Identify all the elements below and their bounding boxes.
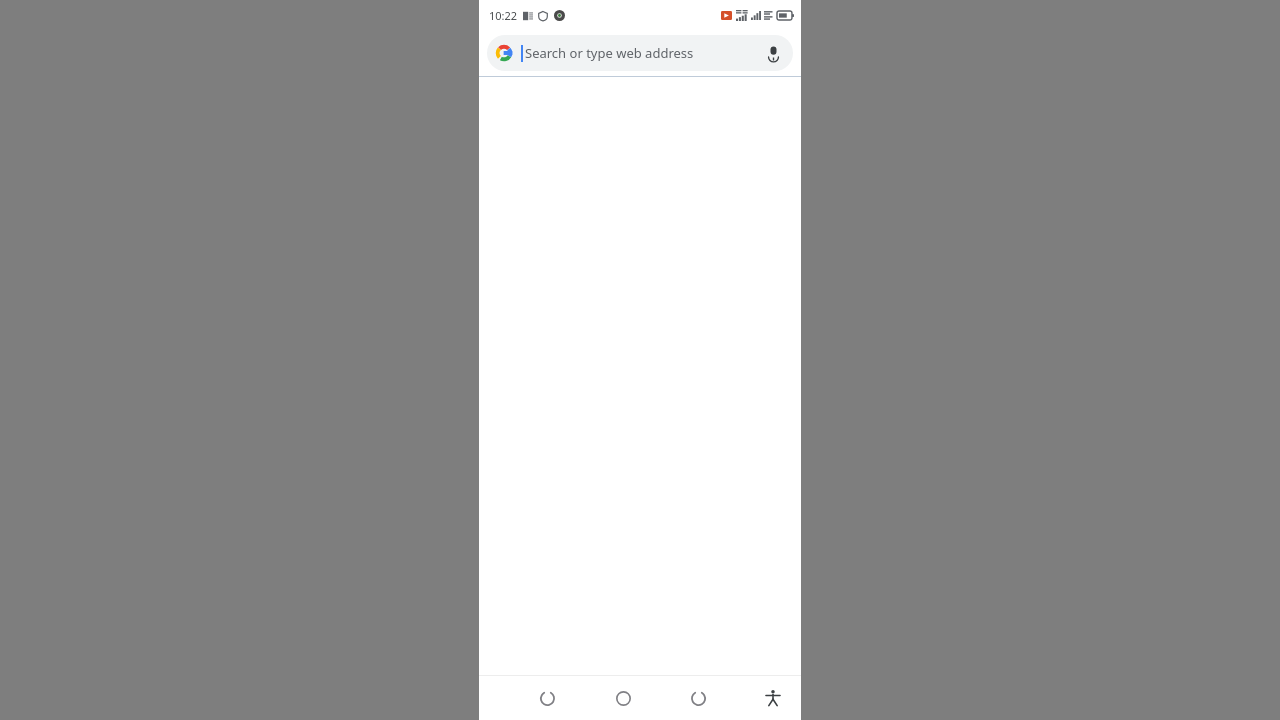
button[interactable]: Accessibility	[751, 676, 795, 720]
staticText: Search or type web address	[525, 44, 761, 62]
button[interactable]: Search or type web address	[487, 35, 793, 71]
button[interactable]: Back	[525, 676, 569, 720]
button[interactable]: Voice search	[761, 41, 785, 65]
staticText: 10:22	[489, 8, 518, 23]
button[interactable]: Recent apps	[676, 676, 720, 720]
button[interactable]: Home	[601, 676, 645, 720]
